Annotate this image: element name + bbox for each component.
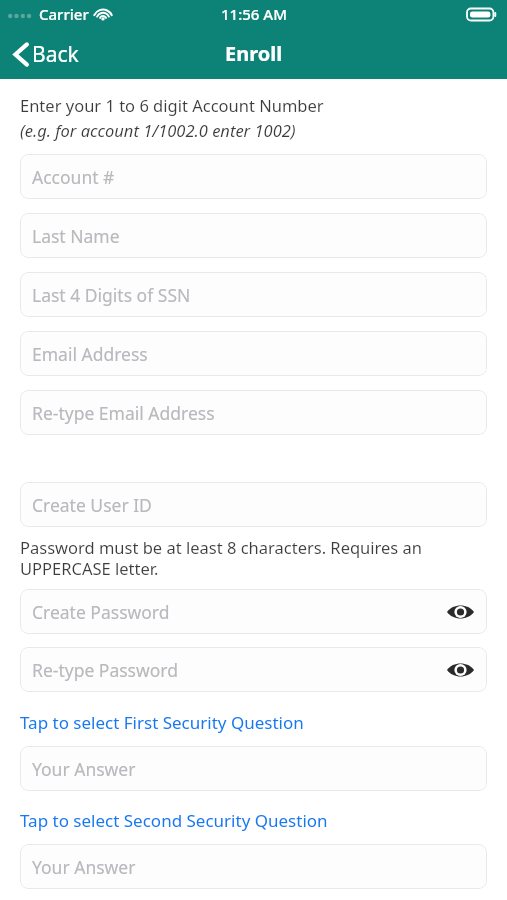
button[interactable]: Your Answer <box>20 844 487 889</box>
staticText: 11:56 AM <box>221 4 287 24</box>
button[interactable]: Show re-typed password <box>443 653 477 687</box>
staticText: Password must be at least 8 characters. … <box>20 536 487 580</box>
staticText: Enroll <box>225 40 283 67</box>
staticText: Re-type Email Address <box>32 401 477 425</box>
button[interactable]: Last Name <box>20 213 487 258</box>
button[interactable]: Create Password <box>20 589 487 634</box>
button[interactable]: Email Address <box>20 331 487 376</box>
staticText: Last Name <box>32 224 477 248</box>
staticText: Create User ID <box>32 493 477 517</box>
staticText: Email Address <box>32 342 477 366</box>
staticText: Your Answer <box>32 757 477 781</box>
staticText: (e.g. for account 1/1002.0 enter 1002) <box>20 119 296 141</box>
button[interactable]: Create User ID <box>20 482 487 527</box>
button[interactable]: Re-type Password <box>20 647 487 692</box>
staticText: Account # <box>32 165 477 189</box>
staticText: Tap to select First Security Question <box>20 711 304 734</box>
staticText: Create Password <box>32 600 443 624</box>
button[interactable]: Account # <box>20 154 487 199</box>
staticText: Your Answer <box>32 855 477 879</box>
staticText: Last 4 Digits of SSN <box>32 283 477 307</box>
button[interactable]: Re-type Email Address <box>20 390 487 435</box>
button[interactable]: Last 4 Digits of SSN <box>20 272 487 317</box>
button[interactable]: Show password <box>443 595 477 629</box>
staticText: Back <box>32 40 79 69</box>
button[interactable]: Your Answer <box>20 746 487 791</box>
button[interactable]: Back <box>0 32 89 76</box>
staticText: Re-type Password <box>32 658 443 682</box>
staticText: Carrier <box>39 4 89 24</box>
button[interactable]: Tap to select Second Security Question <box>0 808 507 833</box>
staticText: Enter your 1 to 6 digit Account Number <box>20 94 324 116</box>
staticText: Tap to select Second Security Question <box>20 809 328 832</box>
button[interactable]: Tap to select First Security Question <box>0 710 507 735</box>
